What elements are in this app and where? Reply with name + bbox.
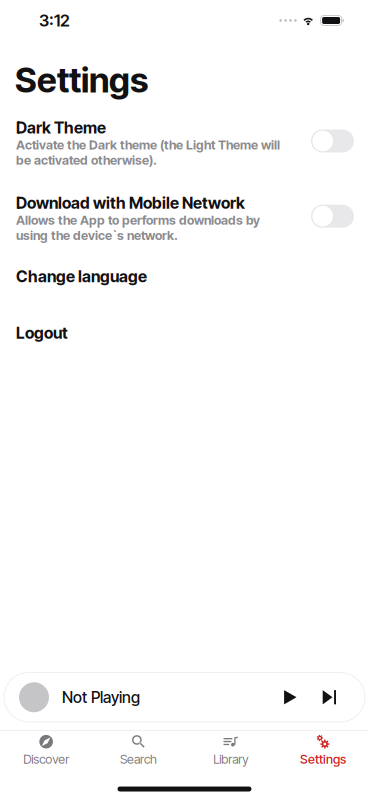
button[interactable]: Next track: [307, 679, 343, 715]
button[interactable]: Logout: [0, 323, 369, 343]
button[interactable]: Download with Mobile Network: [0, 193, 369, 243]
staticText: Activate the Dark theme (the Light Theme…: [16, 137, 280, 168]
staticText: Search: [120, 752, 157, 767]
staticText: Settings: [300, 752, 346, 767]
button[interactable]: Search: [92, 731, 184, 773]
staticText: Settings: [15, 59, 148, 101]
button[interactable]: Change language: [0, 267, 369, 286]
staticText: Change language: [16, 267, 147, 286]
staticText: Allows the App to performs downloads by …: [16, 213, 260, 243]
button[interactable]: Play: [273, 679, 307, 715]
button[interactable]: Settings: [277, 731, 369, 773]
staticText: 3:12: [39, 10, 70, 31]
staticText: Download with Mobile Network: [16, 193, 245, 213]
button[interactable]: Library: [184, 731, 277, 773]
staticText: Logout: [16, 323, 68, 343]
staticText: Discover: [23, 752, 69, 767]
staticText: Not Playing: [62, 688, 140, 707]
button[interactable]: Dark Theme: [0, 118, 369, 168]
staticText: Library: [213, 752, 248, 767]
staticText: Dark Theme: [16, 118, 106, 137]
button[interactable]: Discover: [0, 731, 92, 773]
